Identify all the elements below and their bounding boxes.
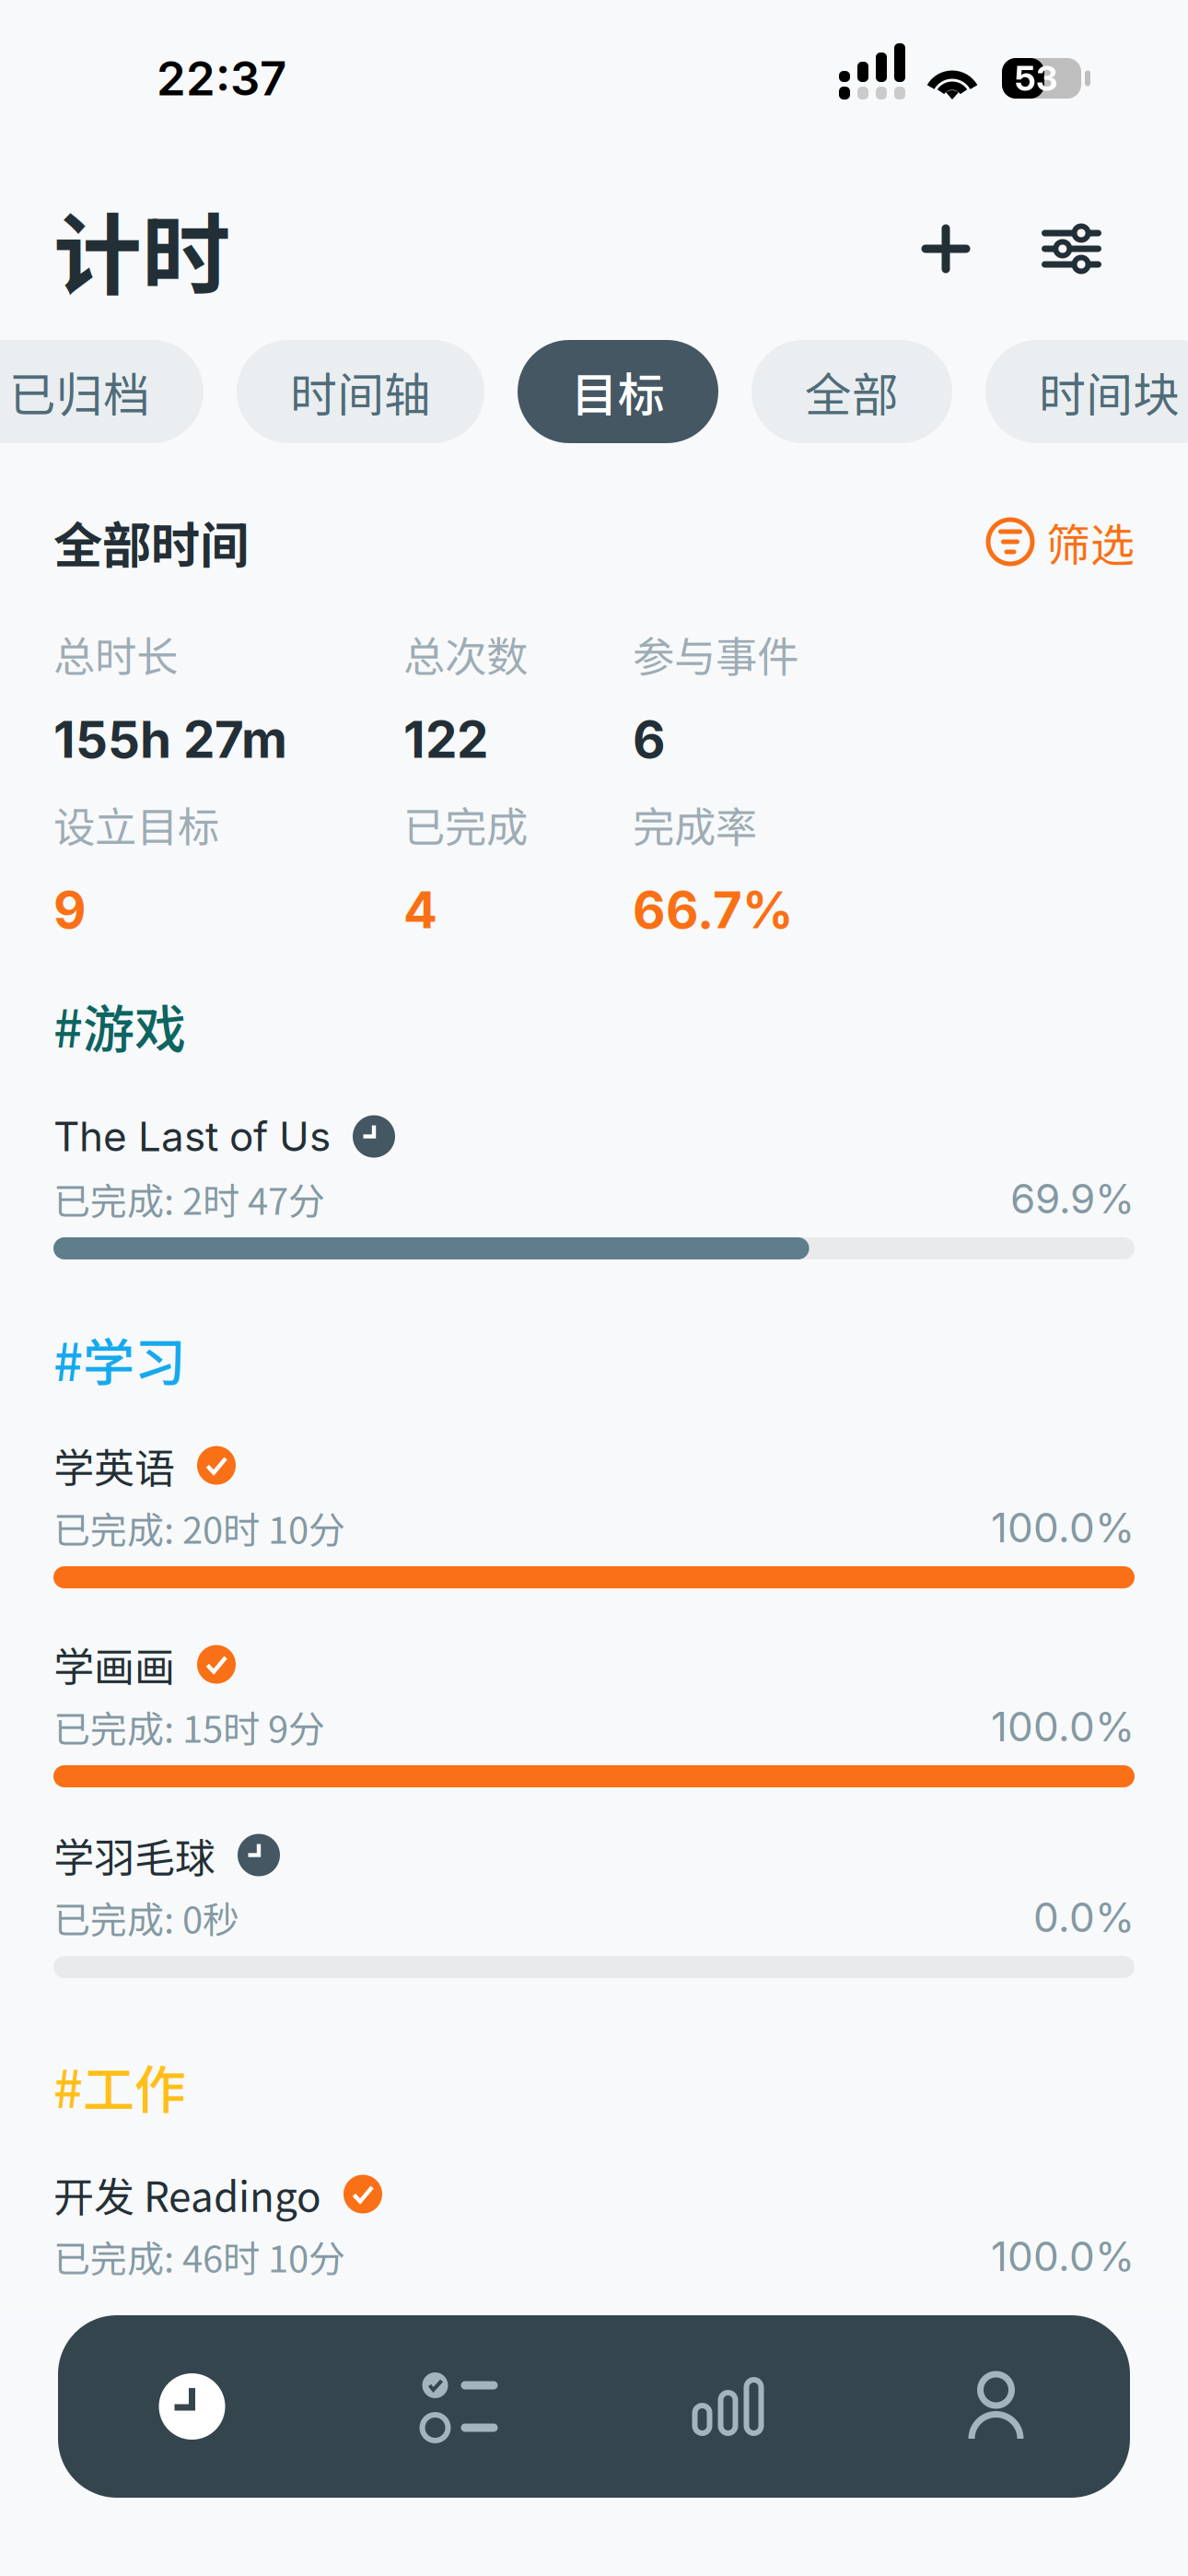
button[interactable]: 已归档 bbox=[0, 340, 204, 443]
button[interactable]: Display options bbox=[1029, 198, 1114, 299]
staticText: 已完成 bbox=[403, 794, 528, 855]
staticText: 0.0% bbox=[1033, 1893, 1135, 1942]
staticText: 学英语 bbox=[53, 1436, 175, 1495]
button[interactable]: 学英语 bbox=[53, 1430, 1135, 1588]
staticText: 22:37 bbox=[157, 50, 286, 107]
staticText: 完成率 bbox=[633, 794, 757, 855]
staticText: #游戏 bbox=[53, 988, 186, 1063]
staticText: The Last of Us bbox=[53, 1112, 331, 1161]
staticText: 已完成: 20时 10分 bbox=[53, 1501, 345, 1554]
staticText: #工作 bbox=[53, 2049, 186, 2123]
staticText: 计时 bbox=[53, 185, 230, 313]
staticText: 100.0% bbox=[991, 2232, 1135, 2281]
button[interactable]: 开发 Readingo bbox=[53, 2159, 1135, 2283]
button[interactable]: 目标 bbox=[518, 340, 718, 443]
button[interactable]: Timer bbox=[58, 2315, 326, 2498]
staticText: 时间块 bbox=[1039, 358, 1180, 425]
button[interactable]: 学羽毛球 bbox=[53, 1820, 1135, 1978]
button[interactable]: 时间轴 bbox=[237, 340, 484, 443]
staticText: 全部时间 bbox=[53, 506, 249, 577]
button[interactable]: The Last of Us bbox=[53, 1101, 1135, 1259]
staticText: 9 bbox=[53, 879, 87, 940]
staticText: 学羽毛球 bbox=[53, 1826, 215, 1884]
staticText: 总次数 bbox=[403, 624, 528, 684]
staticText: 69.9% bbox=[1010, 1174, 1135, 1223]
staticText: #学习 bbox=[53, 1322, 186, 1396]
staticText: 开发 Readingo bbox=[53, 2165, 321, 2223]
staticText: 66.7% bbox=[633, 879, 794, 940]
staticText: 122 bbox=[403, 709, 488, 770]
staticText: 已完成: 0秒 bbox=[53, 1891, 239, 1944]
staticText: 目标 bbox=[571, 358, 665, 425]
staticText: 筛选 bbox=[1046, 510, 1135, 574]
staticText: 已完成: 15时 9分 bbox=[53, 1700, 325, 1753]
button[interactable]: Statistics bbox=[594, 2315, 862, 2498]
staticText: 总时长 bbox=[53, 624, 178, 684]
button[interactable]: Profile bbox=[862, 2315, 1130, 2498]
staticText: 155h 27m bbox=[53, 709, 287, 770]
staticText: 已归档 bbox=[9, 358, 150, 425]
button[interactable]: Add bbox=[881, 198, 1010, 299]
staticText: 参与事件 bbox=[633, 624, 798, 684]
button[interactable]: 筛选 bbox=[987, 509, 1135, 575]
button[interactable]: 学画画 bbox=[53, 1629, 1135, 1787]
staticText: 4 bbox=[403, 879, 437, 940]
staticText: 时间轴 bbox=[290, 358, 431, 425]
staticText: 6 bbox=[633, 709, 666, 770]
button[interactable]: 全部 bbox=[751, 340, 952, 443]
staticText: 已完成: 46时 10分 bbox=[53, 2230, 345, 2283]
button[interactable]: 时间块 bbox=[985, 340, 1188, 443]
staticText: 学画画 bbox=[53, 1635, 175, 1694]
staticText: 已完成: 2时 47分 bbox=[53, 1172, 325, 1225]
button[interactable]: Tasks bbox=[326, 2315, 594, 2498]
staticText: 全部 bbox=[805, 358, 899, 425]
staticText: 53 bbox=[1015, 57, 1057, 99]
staticText: 100.0% bbox=[991, 1702, 1135, 1751]
staticText: 设立目标 bbox=[53, 794, 219, 855]
staticText: 100.0% bbox=[991, 1503, 1135, 1552]
